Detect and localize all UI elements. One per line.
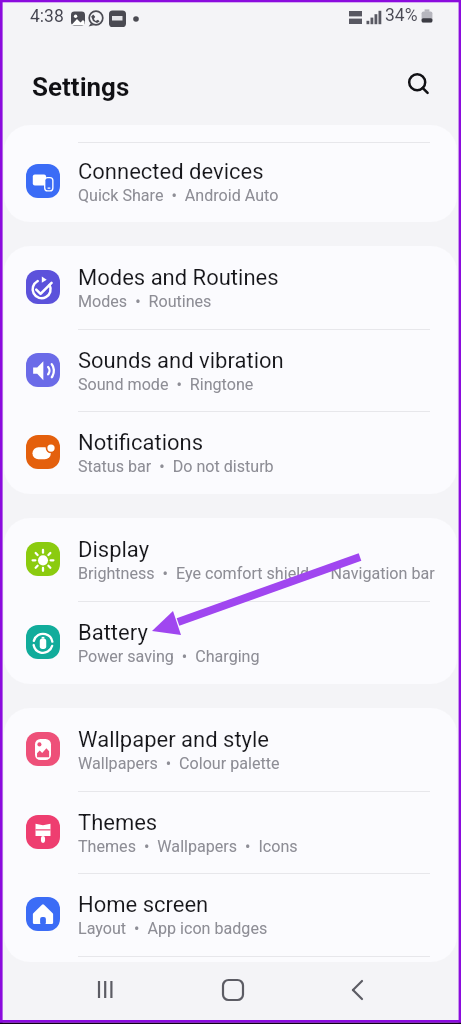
staticText: Connected devices (78, 159, 264, 185)
staticText: Themes (78, 810, 158, 836)
staticText: Display (78, 537, 150, 563)
staticText: 34% (385, 5, 418, 26)
staticText: Modes and Routines (78, 265, 279, 291)
button[interactable]: Home (208, 965, 258, 1015)
button[interactable]: Wallpaper and style (4, 708, 457, 791)
staticText: Home screen (78, 892, 209, 918)
button[interactable]: Home screen (4, 873, 457, 956)
button[interactable]: Connected devices (4, 142, 457, 222)
staticText: Sounds and vibration (78, 348, 284, 374)
button[interactable]: Modes and Routines (4, 246, 457, 329)
staticText: Layout • App icon badges (78, 919, 268, 938)
button[interactable]: Battery (4, 601, 457, 684)
button[interactable]: Display (4, 518, 457, 601)
button[interactable]: Search (397, 63, 440, 106)
staticText: Themes • Wallpapers • Icons (78, 837, 298, 856)
staticText: Quick Share • Android Auto (78, 186, 279, 205)
staticText: Settings (32, 72, 130, 102)
button[interactable]: Sounds and vibration (4, 329, 457, 412)
staticText: Wallpaper and style (78, 727, 270, 753)
staticText: Battery (78, 620, 148, 646)
staticText: Power saving • Charging (78, 647, 260, 666)
staticText: Status bar • Do not disturb (78, 457, 274, 476)
button[interactable]: Back (333, 965, 383, 1015)
staticText: Modes • Routines (78, 292, 212, 311)
staticText: Wallpapers • Colour palette (78, 754, 280, 773)
staticText: Sound mode • Ringtone (78, 375, 254, 394)
staticText: 4:38 (30, 6, 64, 27)
button[interactable]: Themes (4, 791, 457, 874)
staticText: Brightness • Eye comfort shield • Naviga… (78, 564, 435, 583)
button[interactable]: Notifications (4, 411, 457, 494)
staticText: Notifications (78, 430, 204, 456)
button[interactable]: Recents (80, 965, 130, 1015)
